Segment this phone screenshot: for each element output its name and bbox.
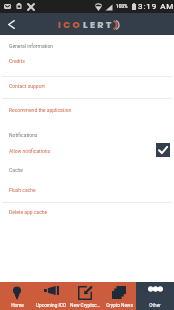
staticText: Other xyxy=(149,303,161,309)
button[interactable]: Home xyxy=(0,282,34,310)
button[interactable]: Crypto News xyxy=(102,282,136,310)
button[interactable]: Delete app cache xyxy=(0,201,174,223)
staticText: General information xyxy=(9,43,54,49)
staticText: 3:19 AM xyxy=(138,2,174,11)
button[interactable]: Allow notifications xyxy=(0,140,174,162)
staticText: Upcoming ICO xyxy=(36,303,66,309)
staticText: Credits xyxy=(9,58,25,64)
button[interactable]: Back xyxy=(0,13,22,35)
button[interactable]: Recommend the application xyxy=(0,99,174,121)
staticText: New Cryptoc… xyxy=(70,303,100,309)
button[interactable]: Other xyxy=(136,282,174,310)
staticText: 100% xyxy=(116,4,128,10)
staticText: Home xyxy=(11,303,24,309)
staticText: LERT xyxy=(83,18,114,31)
staticText: Delete app cache xyxy=(9,209,48,215)
staticText: ICO xyxy=(58,18,83,31)
staticText: Recommend the application xyxy=(9,107,72,113)
staticText: Allow notifications xyxy=(9,148,165,154)
staticText: Flush cache xyxy=(9,187,36,193)
button[interactable]: Contact support xyxy=(0,75,174,97)
button[interactable]: New Cryptoc… xyxy=(68,282,102,310)
staticText: Cache xyxy=(9,167,23,173)
button[interactable]: Credits xyxy=(0,50,174,72)
staticText: Notifications xyxy=(9,132,38,138)
button[interactable]: Upcoming ICO xyxy=(34,282,68,310)
staticText: Crypto News xyxy=(106,303,133,309)
button[interactable]: Flush cache xyxy=(0,179,174,201)
staticText: Contact support xyxy=(9,83,45,89)
